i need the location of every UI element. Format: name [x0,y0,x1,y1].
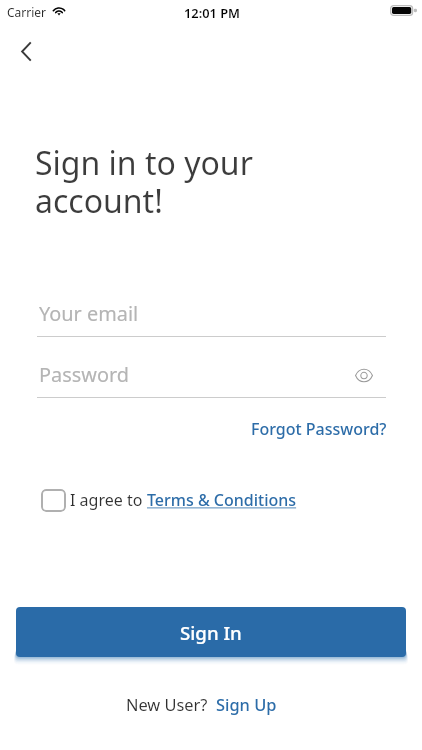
staticText: New User? [126,693,208,715]
button[interactable]: I agree to terms [39,486,67,514]
staticText: Sign Up [216,693,277,715]
button[interactable]: Terms & Conditions [147,489,297,511]
staticText: I agree to [70,489,147,511]
staticText: Password [39,361,129,388]
staticText: 12:01 PM [184,4,240,21]
staticText: Sign in to your account! [35,141,253,222]
staticText: Sign In [180,620,242,645]
button[interactable]: Forgot Password? [247,415,391,443]
button[interactable]: Back [4,29,48,73]
staticText: Forgot Password? [251,418,387,440]
staticText: Terms & Conditions [147,489,297,511]
button[interactable]: Sign In [16,607,406,657]
button[interactable]: Sign Up [216,693,277,715]
staticText: Your email [39,300,139,327]
button[interactable]: Show password [348,359,380,391]
staticText: Carrier [7,4,47,20]
